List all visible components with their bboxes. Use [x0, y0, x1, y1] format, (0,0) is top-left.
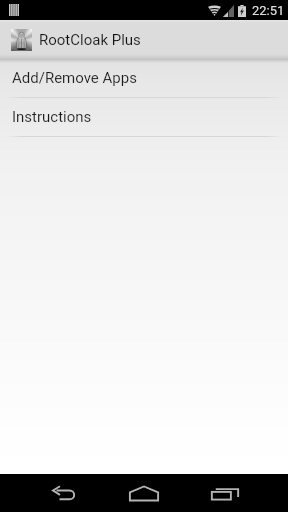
button[interactable]: Add/Remove Apps — [0, 59, 288, 97]
staticText: RootCloak Plus — [39, 31, 141, 49]
button[interactable]: Back — [36, 474, 90, 512]
button[interactable]: RootCloak Plus — [0, 20, 288, 59]
button[interactable]: Instructions — [0, 98, 288, 136]
button[interactable]: Recent apps — [198, 474, 252, 512]
staticText: Add/Remove Apps — [12, 69, 137, 87]
button[interactable]: Home — [117, 474, 171, 512]
staticText: 22:51 — [252, 3, 285, 18]
staticText: Instructions — [12, 108, 92, 126]
